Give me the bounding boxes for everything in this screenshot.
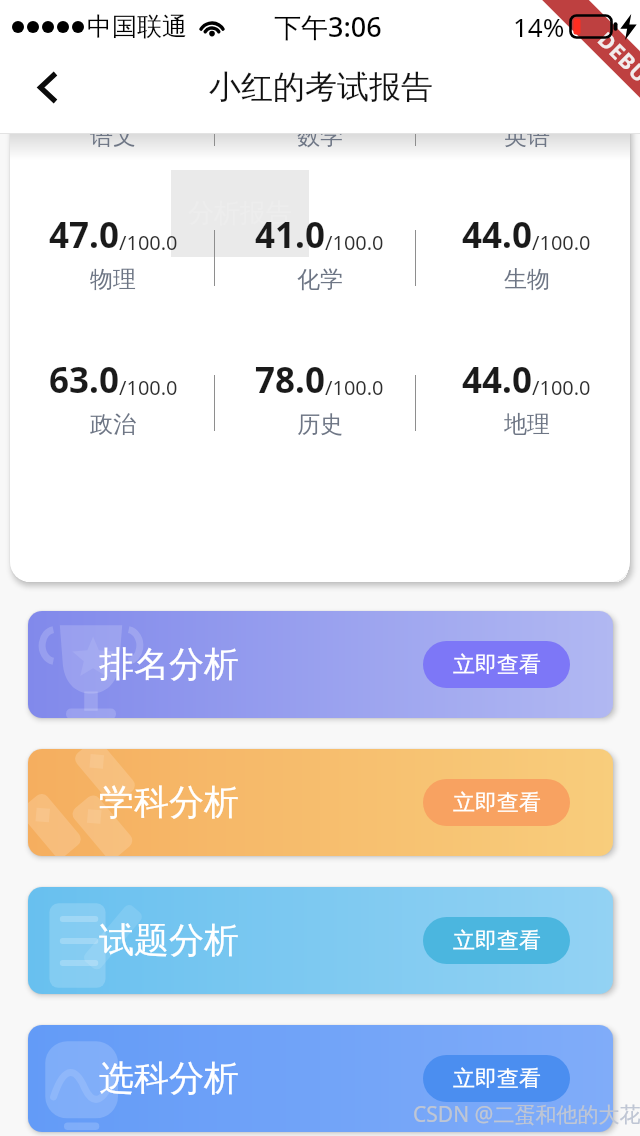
staticText: DEBUG	[591, 26, 640, 101]
staticText: 语文	[90, 122, 136, 151]
staticText: /100.0	[532, 374, 591, 401]
staticText: 14%	[513, 9, 565, 44]
staticText: 立即查看	[453, 1065, 541, 1093]
button[interactable]: 选科分析	[28, 1025, 613, 1132]
staticText: /100.0	[532, 229, 591, 256]
staticText: 41.0	[255, 211, 325, 259]
staticText: /100.0	[325, 229, 384, 256]
staticText: 44.0	[462, 211, 532, 259]
staticText: 排名分析	[99, 642, 239, 686]
staticText: 44.0	[462, 356, 532, 404]
button[interactable]: Back	[0, 50, 94, 134]
staticText: 英语	[504, 122, 550, 151]
staticText: 化学	[297, 265, 343, 294]
staticText: 生物	[504, 265, 550, 294]
button[interactable]: 立即查看	[423, 917, 570, 964]
button[interactable]: 排名分析	[28, 611, 613, 718]
staticText: /100.0	[119, 374, 178, 401]
staticText: 47.0	[49, 211, 119, 259]
button[interactable]: 立即查看	[423, 1055, 570, 1102]
staticText: 63.0	[49, 356, 119, 404]
staticText: 分析报告	[188, 197, 292, 230]
staticText: 小红的考试报告	[209, 67, 433, 107]
staticText: 下午3:06	[274, 8, 382, 45]
staticText: 历史	[297, 410, 343, 439]
staticText: 立即查看	[453, 927, 541, 955]
button[interactable]: 立即查看	[423, 779, 570, 826]
staticText: 中国联通	[87, 11, 187, 42]
staticText: /100.0	[119, 229, 178, 256]
staticText: 学科分析	[99, 780, 239, 824]
button[interactable]: 试题分析	[28, 887, 613, 994]
staticText: 78.0	[255, 356, 325, 404]
staticText: 物理	[90, 265, 136, 294]
button[interactable]: 立即查看	[423, 641, 570, 688]
staticText: 政治	[90, 410, 136, 439]
staticText: 数学	[297, 122, 343, 151]
staticText: 试题分析	[99, 918, 239, 962]
staticText: 立即查看	[453, 651, 541, 679]
button[interactable]: 学科分析	[28, 749, 613, 856]
staticText: 立即查看	[453, 789, 541, 817]
staticText: 地理	[504, 410, 550, 439]
staticText: /100.0	[325, 374, 384, 401]
staticText: 选科分析	[99, 1056, 239, 1100]
staticText: CSDN @二蛋和他的大花	[413, 1100, 640, 1129]
